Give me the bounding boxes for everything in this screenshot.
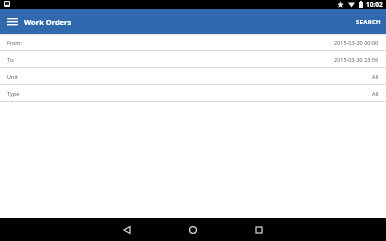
button[interactable] xyxy=(239,218,279,241)
staticText: 2015-03-30 23:59 xyxy=(334,56,379,63)
staticText: All xyxy=(372,90,379,97)
staticText: 2015-03-30 00:00 xyxy=(334,39,379,46)
staticText: From: xyxy=(7,39,22,46)
button[interactable]: SEARCH xyxy=(351,9,386,34)
staticText: 10:02 xyxy=(366,0,383,9)
staticText: All xyxy=(372,73,379,80)
button[interactable] xyxy=(173,218,213,241)
button[interactable]: From: xyxy=(0,34,386,50)
staticText: Unit xyxy=(7,73,18,80)
button[interactable] xyxy=(107,218,147,241)
button[interactable]: Unit xyxy=(0,68,386,84)
staticText: Type xyxy=(7,90,20,97)
staticText: To: xyxy=(7,56,15,63)
button[interactable] xyxy=(0,10,24,34)
staticText: Work Orders xyxy=(24,17,72,27)
staticText: SEARCH xyxy=(356,18,381,26)
button[interactable]: Type xyxy=(0,85,386,101)
button[interactable]: To: xyxy=(0,51,386,67)
